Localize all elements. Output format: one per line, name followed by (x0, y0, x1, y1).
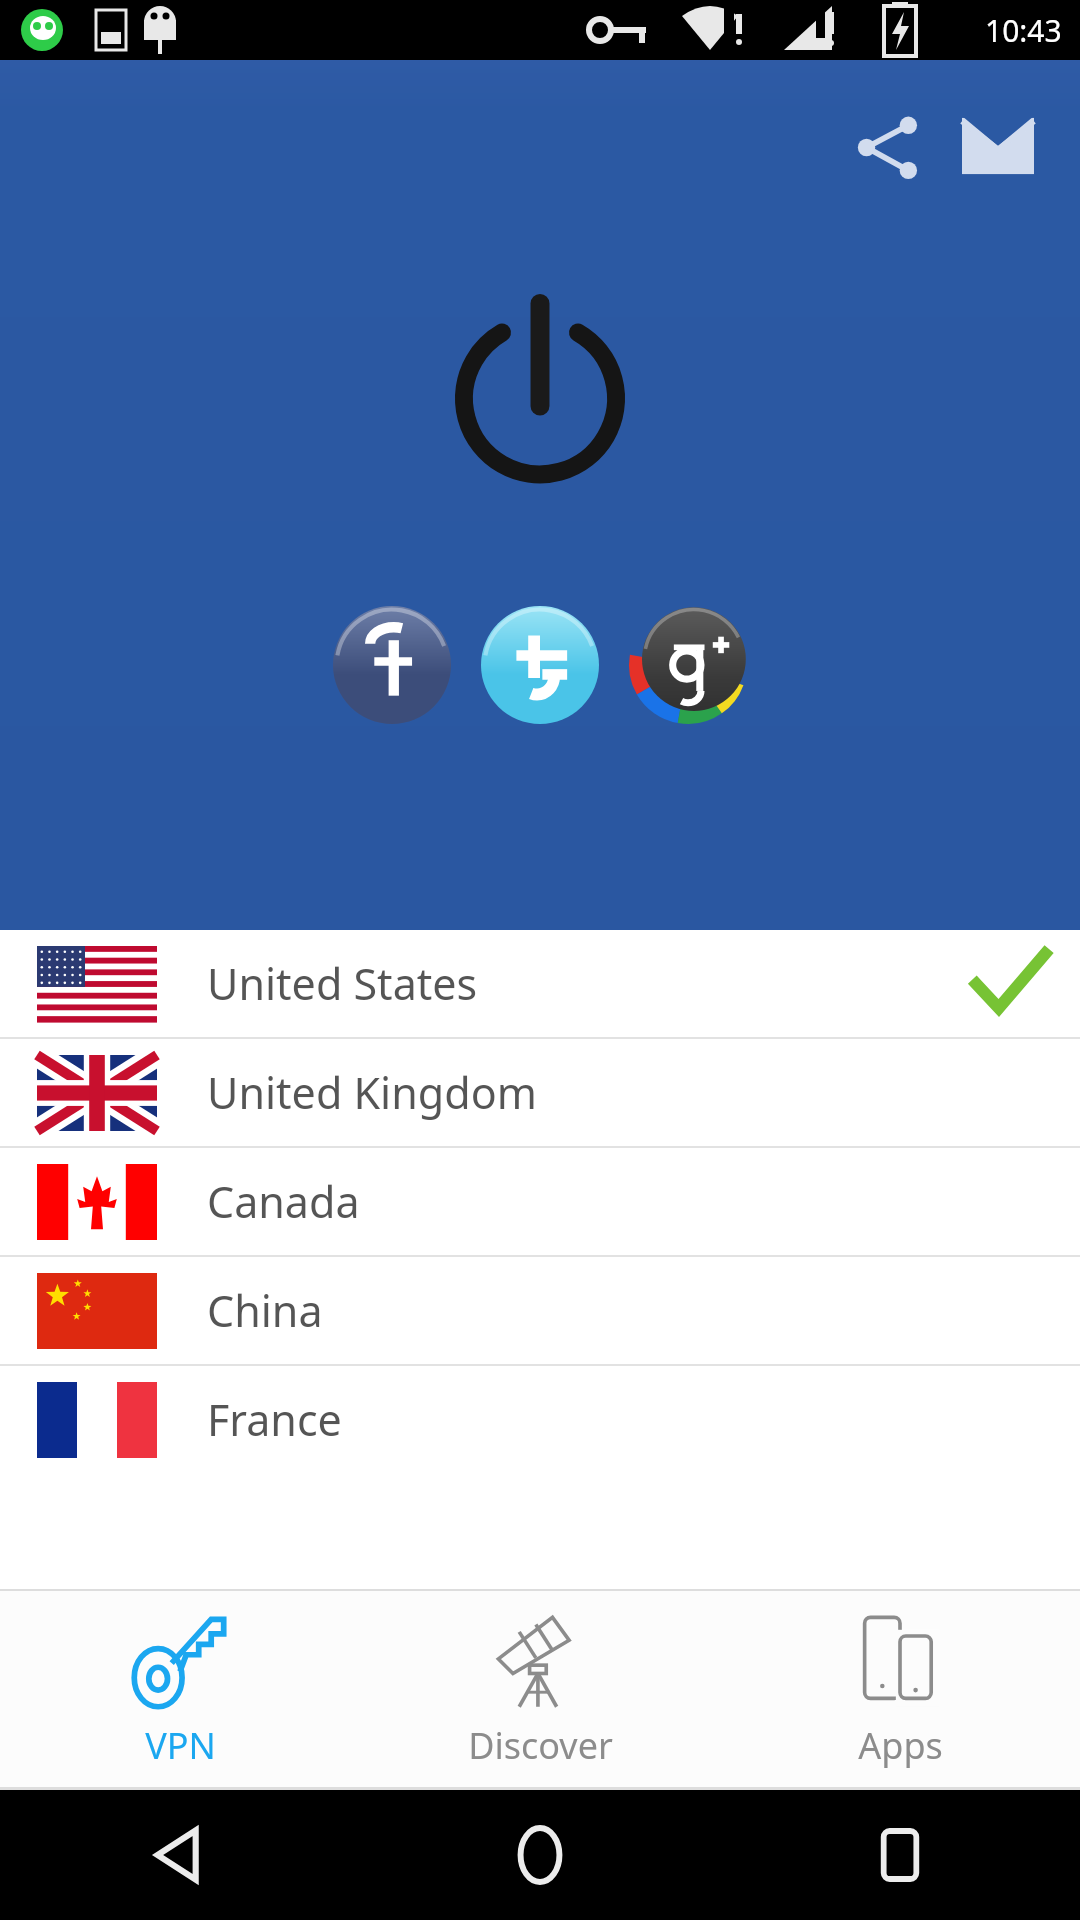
button[interactable]: Facebook (329, 602, 455, 728)
staticText: Apps (858, 1721, 943, 1770)
staticText: VPN (145, 1721, 216, 1770)
button[interactable]: Canada (0, 1148, 1080, 1255)
button[interactable]: Apps (720, 1591, 1080, 1787)
staticText: Canada (207, 1172, 360, 1231)
button[interactable]: Share (836, 94, 940, 198)
button[interactable]: Recents (720, 1790, 1080, 1920)
staticText: France (207, 1390, 342, 1449)
staticText: United States (207, 954, 478, 1013)
staticText: China (207, 1281, 323, 1340)
staticText: United Kingdom (207, 1063, 537, 1122)
button[interactable]: Discover (360, 1591, 720, 1787)
button[interactable]: Email (946, 94, 1050, 198)
button[interactable]: China (0, 1257, 1080, 1364)
button[interactable]: Back (0, 1790, 360, 1920)
button[interactable]: United States (0, 930, 1080, 1037)
button[interactable]: Google Plus (625, 602, 751, 728)
button[interactable]: Twitter (477, 602, 603, 728)
button[interactable]: Home (360, 1790, 720, 1920)
button[interactable]: United Kingdom (0, 1039, 1080, 1146)
button[interactable]: VPN (0, 1591, 360, 1787)
staticText: 10:43 (985, 10, 1062, 51)
button[interactable]: France (0, 1366, 1080, 1473)
staticText: Discover (468, 1721, 613, 1770)
button[interactable]: Connect VPN (425, 272, 655, 502)
